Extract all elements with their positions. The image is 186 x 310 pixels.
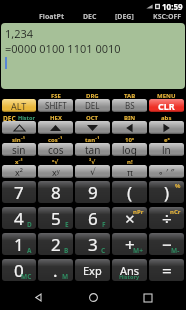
button[interactable]: + — [112, 233, 147, 255]
staticText: n! — [127, 158, 133, 165]
staticText: B — [64, 246, 69, 255]
staticText: sin⁻¹ — [12, 136, 26, 143]
button[interactable]: ÷ — [149, 207, 184, 229]
button[interactable] — [112, 121, 147, 134]
button[interactable]: 3 — [75, 233, 110, 255]
button[interactable]: log — [112, 143, 147, 156]
staticText: − — [162, 233, 172, 255]
staticText: BIN — [124, 114, 136, 121]
button[interactable]: Ans — [112, 259, 147, 281]
staticText: C — [101, 246, 106, 255]
staticText: MENU — [157, 92, 176, 99]
button[interactable]: sin — [2, 143, 36, 156]
staticText: MC — [21, 272, 32, 281]
staticText: x² — [15, 166, 23, 178]
button[interactable]: × — [112, 207, 147, 229]
staticText: nPr — [133, 208, 144, 216]
staticText: ³√ — [89, 158, 96, 165]
button[interactable]: = — [149, 259, 184, 281]
button[interactable]: CLR — [149, 99, 184, 112]
staticText: abs — [161, 114, 172, 121]
staticText: ˣ√ — [52, 158, 59, 165]
staticText: 9 — [88, 181, 98, 203]
staticText: 3 — [88, 233, 98, 255]
staticText: FloatPt — [39, 12, 64, 22]
staticText: xʸ — [52, 166, 60, 178]
staticText: cos — [48, 143, 64, 156]
staticText: ÷ — [162, 207, 172, 229]
staticText: 8 — [51, 181, 61, 203]
staticText: M- — [171, 246, 180, 255]
button[interactable]: π — [112, 165, 147, 178]
staticText: 1,234 — [5, 26, 34, 41]
button[interactable] — [38, 121, 73, 134]
button[interactable]: ln — [149, 143, 184, 156]
staticText: tan⁻¹ — [85, 136, 100, 143]
staticText: x⁻¹ — [15, 158, 23, 165]
staticText: 4 — [14, 207, 24, 229]
staticText: ( — [127, 181, 133, 203]
button[interactable]: − — [149, 233, 184, 255]
button[interactable]: 2 — [38, 233, 73, 255]
staticText: HEX — [50, 114, 62, 121]
staticText: sin — [12, 143, 26, 156]
staticText: DEC — [3, 114, 16, 121]
button[interactable]: 8 — [38, 181, 73, 203]
button[interactable]: 5 — [38, 207, 73, 229]
button[interactable]: 4 — [2, 207, 36, 229]
staticText: log — [122, 143, 137, 156]
button[interactable]: ) — [149, 181, 184, 203]
button[interactable]: Exp — [75, 259, 110, 281]
button[interactable]: ∘ ′ ″ — [149, 165, 184, 178]
staticText: 2 — [51, 233, 61, 255]
button[interactable]: Recents — [131, 285, 165, 310]
staticText: ALT — [11, 100, 27, 112]
button[interactable]: x² — [2, 165, 36, 178]
staticText: DEL — [85, 100, 100, 111]
staticText: Exp — [83, 263, 102, 278]
button[interactable]: SHIFT — [38, 99, 73, 112]
staticText: π — [127, 166, 133, 178]
button[interactable]: 0 — [2, 259, 36, 281]
button[interactable]: DEC — [82, 12, 98, 22]
button[interactable]: Back — [21, 285, 55, 310]
button[interactable] — [75, 121, 110, 134]
staticText: 10:59 — [162, 1, 183, 12]
staticText: . — [53, 259, 58, 281]
button[interactable]: KSC:OFF — [152, 12, 183, 22]
staticText: ∘ ′ ″ — [158, 166, 175, 178]
button[interactable]: 1 — [2, 233, 36, 255]
staticText: 0 — [14, 259, 24, 281]
staticText: Ans — [120, 263, 140, 278]
button[interactable]: BS — [112, 99, 147, 112]
staticText: TAB — [124, 92, 136, 99]
staticText: DEC — [83, 12, 97, 22]
button[interactable]: ( — [112, 181, 147, 203]
staticText: = — [162, 259, 172, 281]
staticText: History — [119, 273, 140, 280]
button[interactable]: tan — [75, 143, 110, 156]
staticText: × — [125, 207, 135, 229]
button[interactable]: xʸ — [38, 165, 73, 178]
staticText: OCT — [86, 114, 99, 121]
staticText: cos⁻¹ — [48, 136, 63, 143]
button[interactable] — [149, 121, 184, 134]
staticText: 5 — [51, 207, 61, 229]
staticText: CLR — [158, 100, 175, 112]
button[interactable]: 6 — [75, 207, 110, 229]
button[interactable]: Home — [76, 285, 110, 310]
button[interactable]: √ — [75, 165, 110, 178]
button[interactable]: 7 — [2, 181, 36, 203]
staticText: M+ — [133, 246, 143, 255]
button[interactable]: [DEG] — [114, 12, 135, 22]
staticText: % — [175, 182, 181, 190]
button[interactable] — [2, 121, 36, 134]
button[interactable]: ALT — [2, 99, 36, 112]
button[interactable]: FloatPt — [38, 12, 65, 22]
button[interactable]: DEL — [75, 99, 110, 112]
button[interactable]: . — [38, 259, 73, 281]
staticText: A — [27, 246, 32, 255]
button[interactable]: 9 — [75, 181, 110, 203]
button[interactable]: cos — [38, 143, 73, 156]
staticText: D — [27, 220, 32, 229]
